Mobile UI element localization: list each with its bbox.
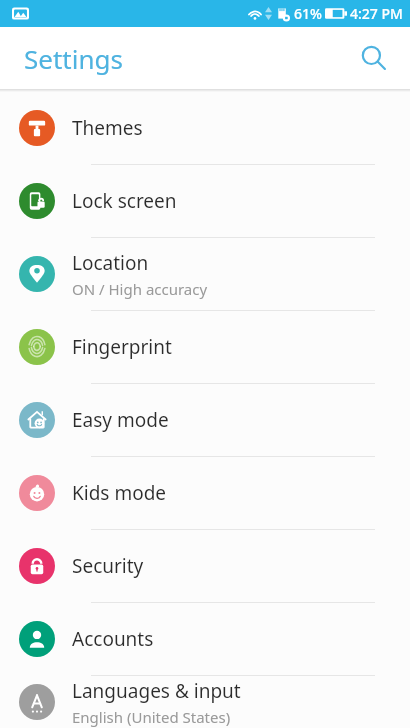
staticText: ON / High accuracy — [72, 279, 208, 299]
staticText: Themes — [72, 115, 143, 141]
staticText: English (United States) — [72, 707, 231, 727]
staticText: Location — [72, 250, 149, 276]
button[interactable]: Languages & input — [0, 676, 410, 728]
button[interactable]: Themes — [0, 92, 410, 164]
button[interactable]: Accounts — [0, 603, 410, 675]
staticText: Easy mode — [72, 407, 169, 433]
staticText: 4:27 PM — [350, 4, 403, 23]
button[interactable]: Security — [0, 530, 410, 602]
staticText: Settings — [24, 41, 123, 76]
staticText: Accounts — [72, 626, 154, 652]
staticText: Fingerprint — [72, 334, 172, 360]
button[interactable]: Easy mode — [0, 384, 410, 456]
staticText: Security — [72, 553, 144, 579]
button[interactable]: Search — [352, 36, 396, 80]
button[interactable]: Fingerprint — [0, 311, 410, 383]
button[interactable]: Kids mode — [0, 457, 410, 529]
staticText: Languages & input — [72, 678, 241, 704]
button[interactable]: Location — [0, 238, 410, 310]
staticText: Lock screen — [72, 188, 177, 214]
button[interactable]: Lock screen — [0, 165, 410, 237]
staticText: 61% — [294, 4, 322, 23]
staticText: Kids mode — [72, 480, 167, 506]
